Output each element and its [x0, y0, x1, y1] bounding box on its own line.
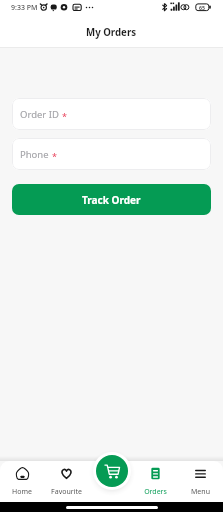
button[interactable]: Home: [0, 461, 44, 497]
staticText: Track Order: [82, 193, 141, 207]
staticText: Order ID: [20, 108, 59, 121]
button[interactable]: Orders: [133, 461, 178, 497]
staticText: *: [62, 110, 67, 122]
staticText: Phone: [20, 148, 49, 161]
staticText: *: [52, 150, 57, 162]
staticText: 9:33 PM: [11, 3, 38, 13]
staticText: My Orders: [86, 26, 137, 39]
staticText: Menu: [191, 487, 210, 497]
button[interactable]: Order ID: [12, 98, 211, 130]
button[interactable]: Menu: [178, 461, 223, 497]
staticText: 65: [199, 4, 205, 11]
button[interactable]: Phone: [12, 138, 211, 170]
button[interactable]: Cart: [96, 455, 128, 487]
staticText: Home: [12, 487, 32, 497]
staticText: Orders: [144, 487, 167, 497]
staticText: Favourite: [51, 487, 82, 497]
button[interactable]: Track Order: [12, 184, 211, 215]
button[interactable]: Favourite: [44, 461, 88, 497]
